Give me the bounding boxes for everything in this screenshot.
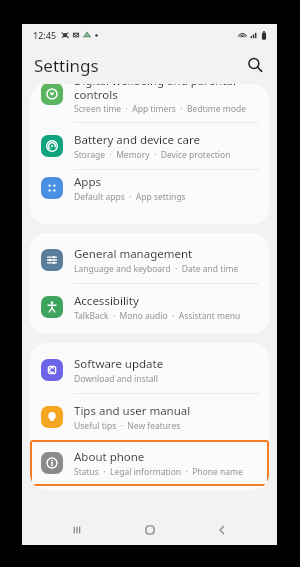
staticText: Storage · Memory · Device protection	[74, 149, 231, 161]
staticText: Screen time · App timers · Bedtime mode	[74, 103, 246, 115]
button[interactable]: Tips and user manual	[30, 394, 269, 440]
button[interactable]: Home	[133, 515, 167, 545]
staticText: Default apps · App settings	[74, 191, 186, 203]
button[interactable]: Back	[205, 515, 239, 545]
button[interactable]: Recents	[60, 515, 94, 545]
button[interactable]: Digital wellbeing and parental controls	[30, 84, 269, 122]
staticText: Apps	[74, 174, 102, 190]
staticText: Tips and user manual	[74, 403, 191, 419]
button[interactable]: Search	[242, 52, 268, 78]
staticText: Accessibility	[74, 293, 139, 309]
button[interactable]: Accessibility	[30, 284, 269, 330]
staticText: TalkBack · Mono audio · Assistant menu	[74, 310, 241, 322]
staticText: Settings	[34, 54, 99, 77]
button[interactable]: General management	[30, 237, 269, 283]
staticText: Software update	[74, 356, 164, 372]
staticText: Language and keyboard · Date and time	[74, 263, 239, 275]
staticText: General management	[74, 246, 193, 262]
staticText: Download and install	[74, 373, 158, 385]
staticText: Digital wellbeing and parental controls	[74, 84, 236, 102]
button[interactable]: Software update	[30, 347, 269, 393]
staticText: About phone	[74, 449, 145, 465]
staticText: Status · Legal information · Phone name	[74, 466, 243, 478]
staticText: 12:45	[33, 29, 57, 41]
button[interactable]: Apps	[30, 170, 269, 206]
staticText: Battery and device care	[74, 132, 201, 148]
button[interactable]: About phone	[30, 440, 269, 486]
staticText: Useful tips · New features	[74, 420, 181, 432]
button[interactable]: Battery and device care	[30, 123, 269, 169]
